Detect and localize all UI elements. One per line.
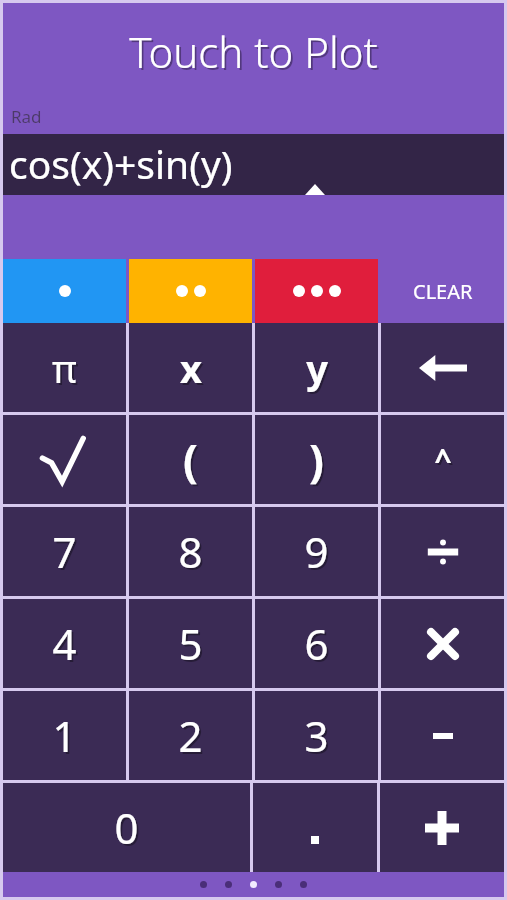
button[interactable]: Operator (381, 691, 504, 780)
staticText: 1 (54, 709, 79, 766)
staticText: 8 (180, 525, 205, 582)
staticText: 6 (306, 617, 331, 674)
button[interactable]: 5 (129, 599, 252, 688)
staticText: 4 (52, 615, 77, 672)
button[interactable]: 6 (255, 599, 378, 688)
button[interactable]: ^ (381, 415, 504, 504)
staticText: y (306, 342, 328, 394)
staticText: 5 (180, 617, 205, 674)
staticText: 9 (304, 523, 329, 580)
staticText: 6 (304, 615, 329, 672)
button[interactable]: π (3, 323, 126, 412)
staticText: 8 (178, 523, 203, 580)
button[interactable]: Plus (380, 783, 504, 872)
button[interactable]: 1 (3, 691, 126, 780)
button[interactable]: y (255, 323, 378, 412)
button[interactable]: 4 (3, 599, 126, 688)
button[interactable]: Plot slot 1 (3, 259, 126, 323)
button[interactable]: CLEAR (381, 259, 504, 323)
button[interactable]: x (129, 323, 252, 412)
staticText: 9 (306, 525, 331, 582)
staticText: 3 (304, 707, 329, 764)
staticText: Touch to Plot (131, 25, 380, 82)
button[interactable]: ( (129, 415, 252, 504)
button[interactable]: cos(x)+sin(y) (3, 134, 504, 195)
staticText: ^ (434, 439, 452, 480)
button[interactable]: Backspace (381, 323, 504, 412)
staticText: ( (183, 430, 198, 490)
button[interactable]: ) (255, 415, 378, 504)
staticText: CLEAR (413, 278, 473, 305)
button[interactable]: 9 (255, 507, 378, 596)
button[interactable]: Plot slot 2 (129, 259, 252, 323)
button[interactable]: Square root (3, 415, 126, 504)
staticText: 7 (52, 523, 77, 580)
staticText: 7 (54, 525, 79, 582)
button[interactable]: Operator (381, 507, 504, 596)
staticText: 0 (116, 801, 141, 858)
staticText: x (180, 342, 202, 394)
staticText: Touch to Plot (129, 23, 378, 80)
button[interactable]: 3 (255, 691, 378, 780)
staticText: π (52, 342, 77, 394)
staticText: Rad (11, 105, 42, 128)
staticText: 3 (306, 709, 331, 766)
button[interactable]: 2 (129, 691, 252, 780)
button[interactable]: Touch to Plot (3, 3, 504, 134)
button[interactable]: 8 (129, 507, 252, 596)
staticText: ) (309, 430, 324, 490)
staticText: 0 (114, 799, 139, 856)
staticText: 4 (54, 617, 79, 674)
staticText: π (54, 344, 79, 396)
button[interactable]: 7 (3, 507, 126, 596)
button[interactable]: Operator (381, 599, 504, 688)
button[interactable]: 0 (3, 783, 250, 872)
staticText: ) (311, 432, 326, 492)
staticText: 5 (178, 615, 203, 672)
staticText: x (182, 344, 204, 396)
staticText: 2 (180, 709, 205, 766)
staticText: ^ (436, 441, 454, 482)
button[interactable]: Plot slot 3 (255, 259, 378, 323)
button[interactable]: Decimal point (253, 783, 377, 872)
staticText: ( (185, 432, 200, 492)
staticText: 2 (178, 707, 203, 764)
staticText: y (308, 344, 330, 396)
staticText: 1 (52, 707, 77, 764)
staticText: cos(x)+sin(y) (9, 137, 233, 190)
